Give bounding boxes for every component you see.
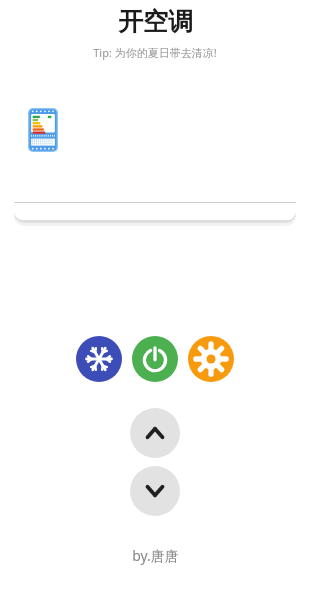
staticText: 开空调: [118, 6, 193, 37]
button[interactable]: 温度调低: [130, 466, 180, 516]
button[interactable]: [14, 98, 296, 220]
button[interactable]: 模式设置: [188, 336, 234, 382]
button[interactable]: 电源开关: [132, 336, 178, 382]
staticText: Tip: 为你的夏日带去清凉!: [93, 45, 217, 60]
staticText: by.唐唐: [132, 546, 179, 565]
button[interactable]: 制冷模式: [76, 336, 122, 382]
button[interactable]: 温度调高: [130, 408, 180, 458]
